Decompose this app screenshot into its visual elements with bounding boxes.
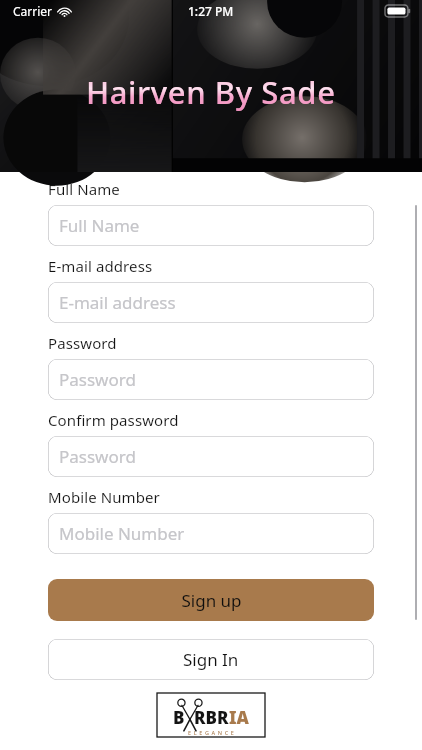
staticText: Full Name [59,214,140,237]
button[interactable]: Sign In [48,639,374,680]
staticText: E-mail address [48,256,153,276]
button[interactable]: Mobile Number [48,513,374,554]
staticText: 1:27 PM [188,3,234,19]
staticText: Mobile Number [48,487,160,507]
staticText: E L E G A N C E [188,729,235,736]
button[interactable]: E-mail address [48,282,374,323]
staticText: Confirm password [48,410,179,430]
button[interactable]: Password [48,359,374,400]
staticText: IA [229,706,249,729]
staticText: Hairven By Sade [86,71,336,113]
staticText: Sign In [183,648,239,671]
button[interactable]: Full Name [48,205,374,246]
staticText: E-mail address [59,291,176,314]
staticText: Password [59,445,136,468]
button[interactable]: Barbria Elegance logo [157,693,265,737]
staticText: Password [59,368,136,391]
staticText: B [173,706,185,729]
staticText: RBR [194,706,229,729]
staticText: Mobile Number [59,522,185,545]
staticText: Sign up [181,589,242,612]
button[interactable]: Sign up [48,579,374,621]
staticText: Password [48,333,117,353]
staticText: Carrier [13,3,53,19]
staticText: Full Name [48,179,120,199]
staticText: Hairven By Sade [86,71,336,113]
button[interactable]: Password [48,436,374,477]
